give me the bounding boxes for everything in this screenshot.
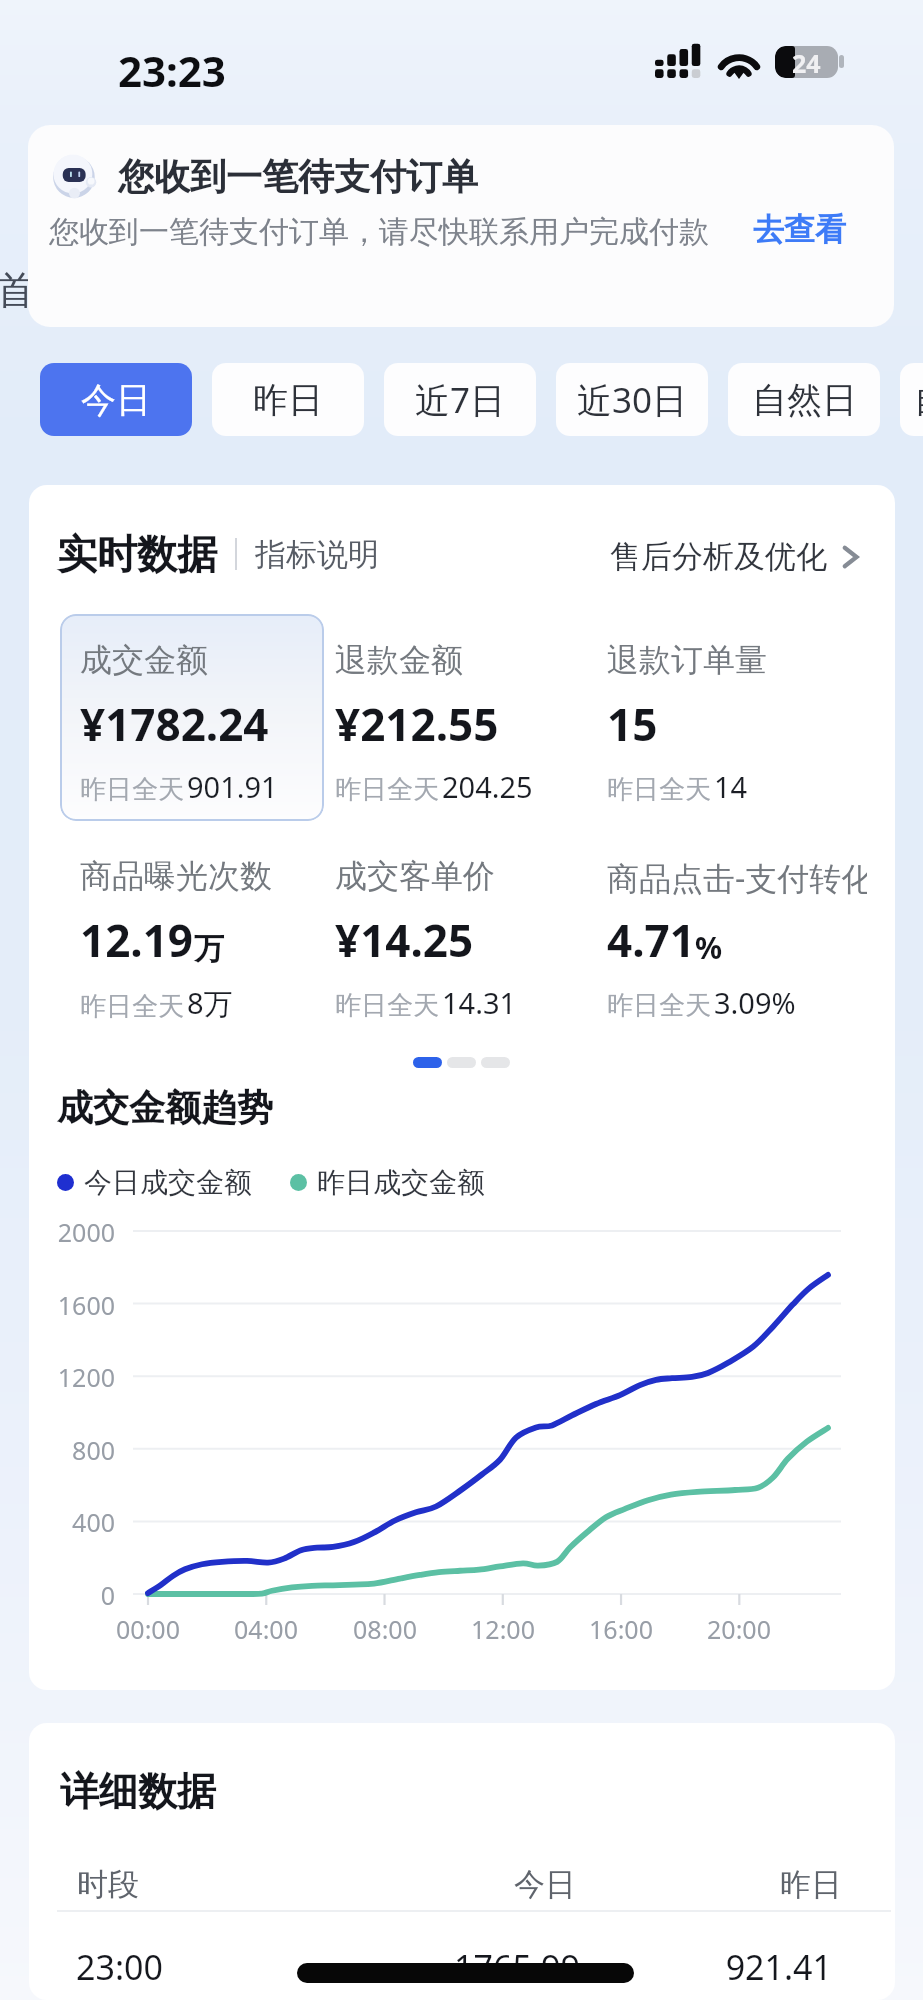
staticText: 16:00	[561, 1612, 681, 1646]
staticText: 成交金额趋势	[57, 1085, 273, 1130]
staticText: 08:00	[325, 1612, 445, 1646]
staticText: 23:00	[76, 1944, 163, 1990]
staticText: 昨日全天	[335, 773, 439, 806]
staticText: 成交金额	[80, 640, 208, 680]
staticText: 400	[29, 1505, 115, 1539]
staticText: 昨日全天	[607, 989, 711, 1022]
button[interactable]: 商品点击-支付转化	[607, 856, 867, 1036]
staticText: 15	[607, 694, 658, 754]
staticText: 详细数据	[60, 1767, 216, 1816]
button[interactable]: 售后分析及优化	[610, 537, 861, 576]
staticText: 昨日全天	[335, 989, 439, 1022]
staticText: 昨日全天	[607, 773, 711, 806]
staticText: 4.71	[607, 910, 695, 970]
staticText: 3.09%	[714, 983, 796, 1022]
staticText: 204.25	[442, 767, 533, 806]
staticText: 您收到一笔待支付订单，请尽快联系用户完成付款	[49, 213, 709, 251]
staticText: 商品点击-支付转化	[607, 856, 867, 900]
button[interactable]: 23:00	[29, 1931, 895, 1993]
staticText: 万	[194, 930, 224, 968]
staticText: 首页	[0, 266, 74, 315]
staticText: 商品曝光次数	[80, 856, 272, 896]
button[interactable]: 自	[900, 363, 923, 436]
button[interactable]: 昨日	[212, 363, 364, 436]
staticText: %	[695, 927, 723, 968]
button[interactable]: Metric pages	[413, 1057, 510, 1068]
staticText: 00:00	[88, 1612, 208, 1646]
staticText: 12.19	[80, 910, 194, 970]
staticText: 成交客单价	[335, 856, 495, 896]
button[interactable]: 商品曝光次数	[80, 856, 340, 1036]
staticText: 近30日	[577, 376, 688, 424]
staticText: 8万	[187, 983, 233, 1023]
staticText: 退款金额	[335, 640, 463, 680]
staticText: 12:00	[443, 1612, 563, 1646]
staticText: 时段	[77, 1865, 139, 1904]
staticText: 今日	[445, 1865, 645, 1904]
button[interactable]: 近7日	[384, 363, 536, 436]
staticText: 自然日	[752, 378, 857, 422]
staticText: 售后分析及优化	[610, 537, 827, 576]
button[interactable]: 您收到一笔待支付订单	[28, 125, 894, 327]
staticText: ¥1782.24	[80, 694, 269, 754]
button[interactable]: 自然日	[728, 363, 880, 436]
staticText: 14.31	[442, 983, 517, 1022]
button[interactable]: 成交客单价	[335, 856, 595, 1036]
button[interactable]: 指标说明	[255, 535, 379, 574]
button[interactable]: 今日	[40, 363, 192, 436]
staticText: 昨日成交金额	[317, 1165, 485, 1200]
button[interactable]: 退款金额	[335, 640, 595, 820]
staticText: 自	[914, 378, 923, 422]
button[interactable]: 成交金额	[80, 640, 340, 820]
staticText: 今日成交金额	[84, 1165, 252, 1200]
staticText: 04:00	[206, 1612, 326, 1646]
button[interactable]: 去查看	[744, 203, 854, 255]
staticText: 昨日全天	[80, 773, 184, 806]
staticText: 昨日	[253, 378, 323, 422]
staticText: 0	[29, 1578, 115, 1612]
staticText: 您收到一笔待支付订单	[118, 154, 478, 199]
staticText: 1200	[29, 1360, 115, 1394]
staticText: 昨日全天	[80, 990, 184, 1023]
button[interactable]: 退款订单量	[607, 640, 867, 820]
staticText: 退款订单量	[607, 640, 767, 680]
staticText: 昨日	[642, 1865, 842, 1904]
staticText: 14	[714, 767, 748, 806]
staticText: 921.41	[632, 1944, 832, 1990]
staticText: 今日	[81, 378, 151, 422]
staticText: 去查看	[753, 210, 846, 249]
staticText: ¥14.25	[335, 910, 474, 970]
staticText: 901.91	[187, 767, 278, 806]
staticText: 24	[792, 46, 821, 78]
button[interactable]: 近30日	[556, 363, 708, 436]
staticText: 近7日	[415, 376, 506, 424]
staticText: 2000	[29, 1215, 115, 1249]
staticText: 800	[29, 1433, 115, 1467]
staticText: 23:23	[118, 42, 226, 99]
staticText: 20:00	[679, 1612, 799, 1646]
staticText: ¥212.55	[335, 694, 499, 754]
staticText: 实时数据	[57, 529, 217, 579]
staticText: 1600	[29, 1288, 115, 1322]
staticText: 1765.99	[417, 1944, 617, 1990]
